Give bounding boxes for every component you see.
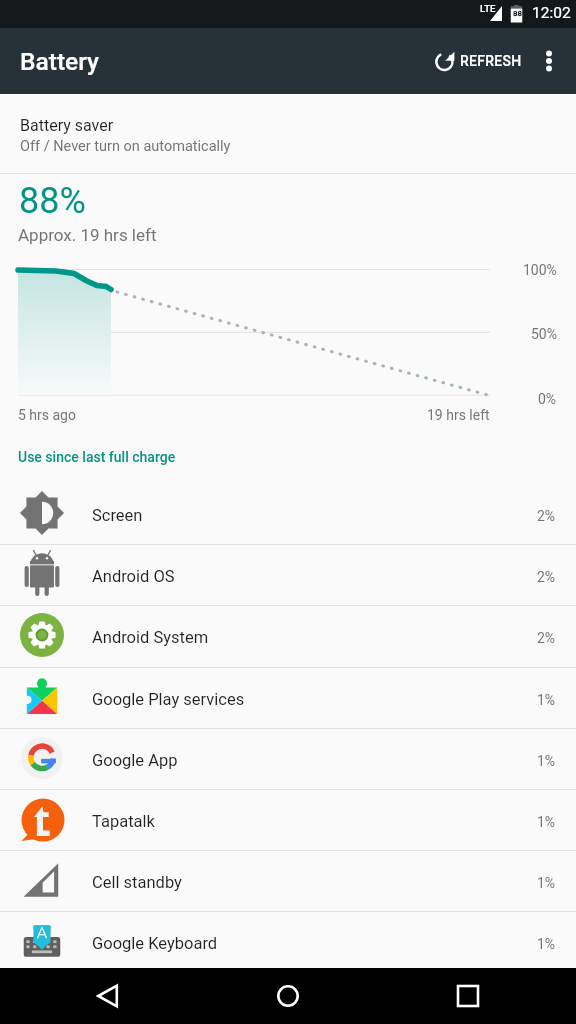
staticText: 1% [537,875,556,891]
staticText: 1% [537,753,556,769]
staticText: 88 [513,9,523,18]
staticText: Android OS [92,567,175,586]
staticText: 2% [537,508,556,524]
staticText: Google App [92,751,178,770]
staticText: 50% [531,326,557,342]
button[interactable]: Recent apps [440,968,496,1024]
button[interactable]: Home [260,968,316,1024]
staticText: Google Play services [92,690,245,709]
button[interactable]: Google App [0,728,576,789]
staticText: Tapatalk [92,812,155,831]
button[interactable]: Android System [0,605,576,666]
staticText: Off / Never turn on automatically [20,138,231,155]
staticText: 0% [538,391,557,407]
button[interactable]: Cell standby [0,850,576,911]
staticText: 2% [537,630,556,646]
staticText: 2% [537,569,556,585]
button[interactable]: Screen [0,483,576,544]
button[interactable]: Google Play services [0,667,576,728]
staticText: 5 hrs ago [18,407,76,423]
button[interactable]: Battery saver [0,94,576,173]
button[interactable]: Use since last full charge [18,449,176,465]
button[interactable]: Android OS [0,544,576,605]
button[interactable]: REFRESH [425,28,532,94]
staticText: REFRESH [460,53,522,69]
staticText: 19 hrs left [427,407,490,423]
button[interactable]: Back [80,968,136,1024]
staticText: Cell standby [92,873,182,892]
button[interactable]: Google Keyboard [0,911,576,972]
staticText: 88% [19,180,86,222]
staticText: Approx. 19 hrs left [18,225,157,245]
staticText: Android System [92,628,209,647]
staticText: Battery saver [20,116,114,135]
staticText: Google Keyboard [92,934,218,953]
staticText: LTE [480,3,496,14]
staticText: Battery [20,47,99,76]
button[interactable]: Tapatalk [0,789,576,850]
staticText: Screen [92,506,143,525]
staticText: 1% [537,814,556,830]
staticText: 1% [537,936,556,952]
staticText: 100% [523,262,557,278]
staticText: 12:02 [532,4,571,22]
staticText: 1% [537,692,556,708]
button[interactable]: More options [526,28,572,94]
